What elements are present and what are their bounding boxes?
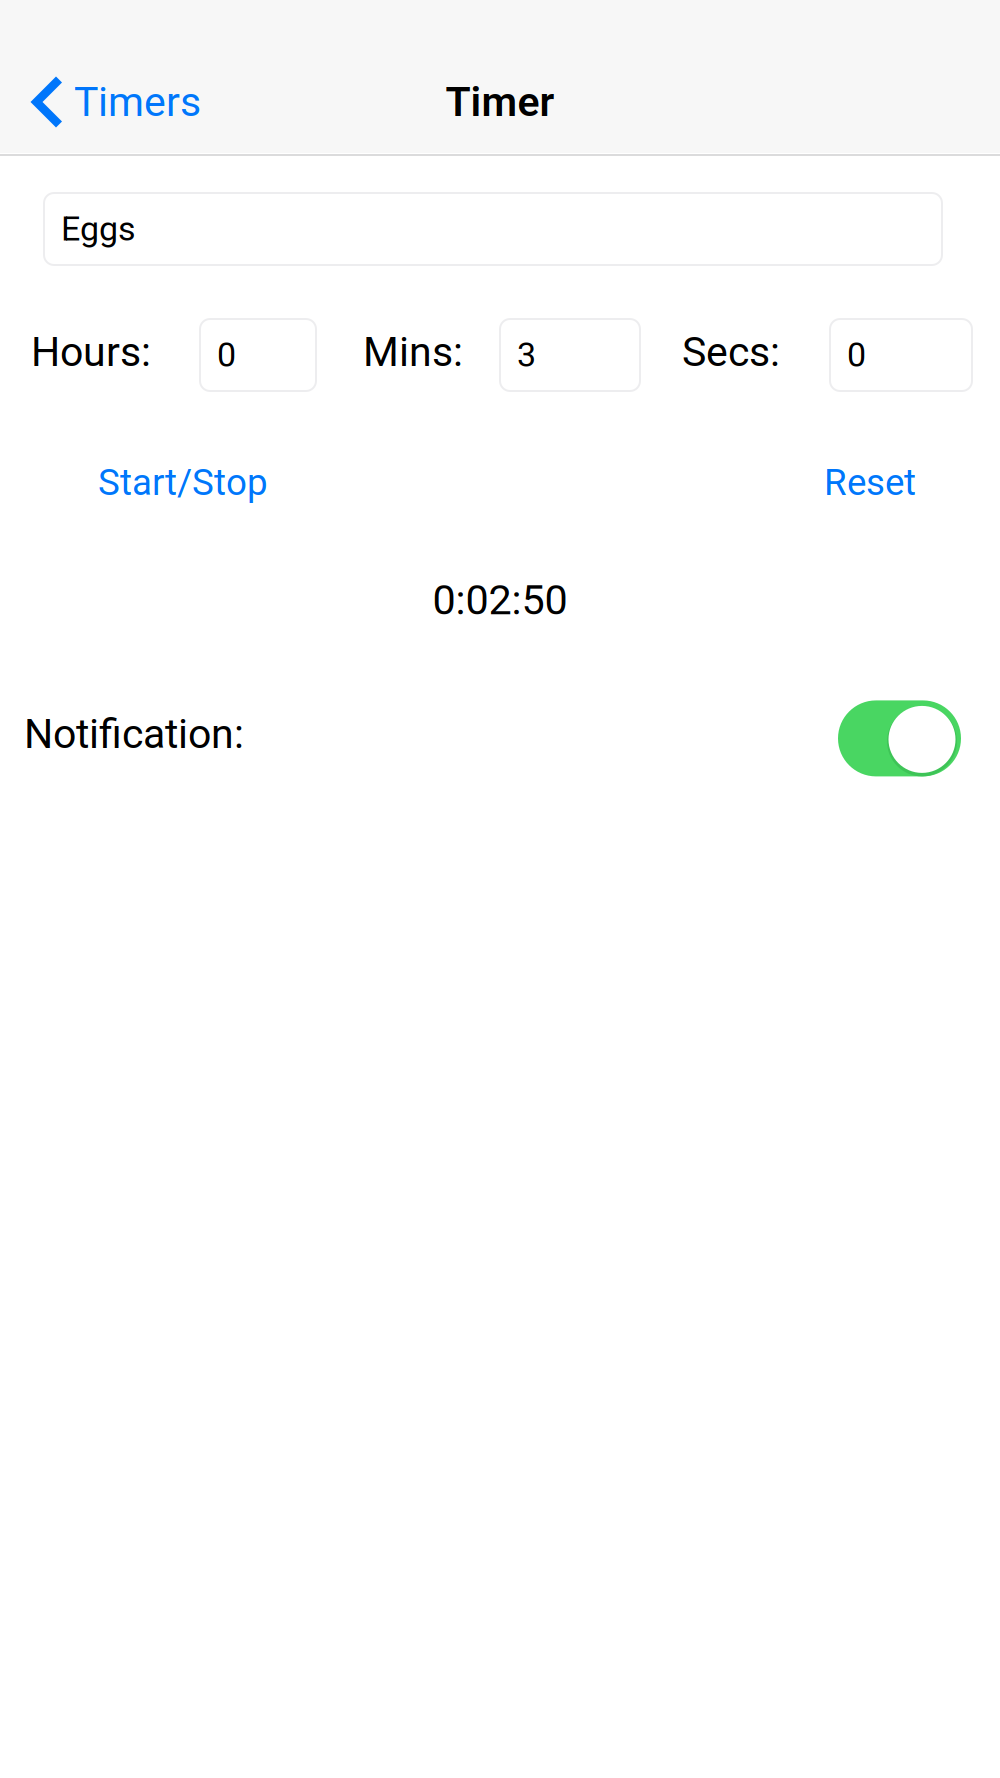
button[interactable]: Timers bbox=[0, 62, 219, 142]
staticText: Timer bbox=[445, 78, 554, 126]
staticText: Eggs bbox=[61, 209, 136, 249]
staticText: 0 bbox=[217, 335, 236, 375]
staticText: Timers bbox=[74, 78, 201, 126]
button[interactable]: Start/Stop bbox=[98, 461, 268, 504]
button[interactable]: Reset bbox=[824, 461, 916, 504]
staticText: Hours: bbox=[31, 328, 151, 376]
staticText: Mins: bbox=[363, 328, 463, 376]
staticText: Secs: bbox=[682, 328, 780, 376]
staticText: Start/Stop bbox=[98, 461, 268, 504]
staticText: Reset bbox=[824, 461, 916, 504]
staticText: 0 bbox=[847, 335, 866, 375]
staticText: Notification: bbox=[24, 710, 244, 758]
staticText: 3 bbox=[517, 335, 536, 375]
button[interactable]: Notification bbox=[838, 700, 961, 776]
staticText: 0:02:50 bbox=[432, 576, 567, 624]
